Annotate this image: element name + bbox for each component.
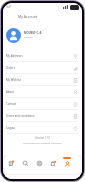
staticText: Developed by Nimbase Solutions	[23, 141, 62, 144]
button[interactable]: MOUSUF C. A	[3, 23, 82, 47]
button[interactable]: Orders	[3, 62, 82, 74]
button[interactable]: Account	[60, 155, 74, 174]
staticText: My Adresses	[6, 54, 23, 58]
button[interactable]: Terms and conditions	[3, 110, 82, 122]
staticText: About	[6, 90, 14, 94]
button[interactable]: Cart	[46, 155, 60, 174]
button[interactable]: Search	[18, 155, 32, 174]
staticText: 9:41	[6, 5, 12, 9]
button[interactable]: Contact	[3, 98, 82, 110]
button[interactable]: Logout	[3, 122, 82, 134]
button[interactable]: About	[3, 86, 82, 98]
button[interactable]: My Adresses	[3, 50, 82, 62]
staticText: MOUSUF C. A	[24, 31, 42, 35]
staticText: My Wishlist	[6, 78, 21, 82]
button[interactable]: Shop	[4, 155, 18, 174]
staticText: Logout	[6, 126, 16, 130]
staticText: Version 1.10	[35, 136, 50, 140]
staticText: My Account	[18, 14, 38, 19]
staticText: Personal	[24, 36, 33, 39]
staticText: Terms and conditions	[6, 114, 35, 118]
button[interactable]: My Wishlist	[3, 74, 82, 86]
button[interactable]: Explore	[32, 155, 46, 174]
staticText: Contact	[6, 102, 17, 106]
staticText: Orders	[6, 66, 16, 70]
